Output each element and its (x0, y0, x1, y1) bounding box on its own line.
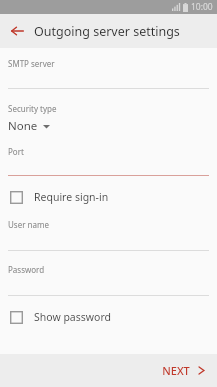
staticText: Port (8, 146, 24, 157)
staticText: None (8, 118, 38, 134)
staticText: Require sign-in (34, 190, 109, 204)
staticText: Outgoing server settings (34, 23, 180, 40)
button[interactable]: None (0, 117, 50, 135)
staticText: SMTP server (8, 58, 55, 69)
staticText: Show password (34, 310, 111, 324)
button[interactable]: Require sign-in (0, 185, 217, 209)
staticText: Security type (8, 103, 57, 114)
staticText: 10:00 (191, 1, 213, 13)
staticText: User name (8, 219, 49, 230)
staticText: NEXT (162, 363, 190, 378)
button[interactable]: Navigate up (7, 21, 27, 41)
button[interactable]: NEXT (150, 357, 217, 384)
staticText: Password (8, 264, 45, 275)
button[interactable]: Show password (0, 305, 217, 329)
